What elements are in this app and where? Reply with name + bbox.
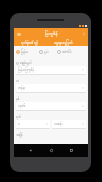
staticText: ရက် [16, 115, 21, 120]
staticText: ၁၃၈၆ [18, 104, 26, 109]
staticText: လဆန်း [54, 122, 63, 127]
button[interactable]: ရှမ်း [39, 49, 49, 55]
button[interactable]: ၁၃၈၆ [16, 102, 86, 110]
staticText: နေ့ထူးနေ့မြတ် [54, 40, 73, 45]
button[interactable]: မြန်မာ [16, 49, 29, 55]
staticText: ၁ [18, 122, 20, 127]
button[interactable]: Back [26, 146, 35, 155]
button[interactable]: လဆန်း [52, 120, 86, 128]
button[interactable]: More options [80, 30, 87, 37]
staticText: မြန်မာ [21, 50, 29, 55]
staticText: တန်ခူး [18, 86, 26, 91]
staticText: ရက်စွဲခေါ်ရန် [21, 40, 38, 45]
staticText: အင်္ဂလိပ် [62, 50, 72, 55]
button[interactable]: တန်ခူး [16, 84, 86, 92]
button[interactable]: အင်္ဂလိပ် [57, 49, 72, 55]
button[interactable]: မြန်မာပြက္ခဒိန် [16, 66, 86, 74]
staticText: လ [16, 79, 19, 84]
button[interactable]: ရက်စွဲခေါ်ရန် [14, 38, 45, 46]
button[interactable]: Recent apps [67, 146, 76, 155]
button[interactable]: Home [47, 146, 56, 155]
staticText: နေ့စွဲရွေးပါ [20, 61, 32, 66]
staticText: နှစ် [16, 97, 20, 102]
staticText: မြန်မာပြက္ခဒိန် [18, 68, 34, 73]
button[interactable]: ၁ [16, 120, 50, 128]
staticText: ရှမ်း [44, 50, 49, 55]
staticText: ပြက္ခဒိန် [45, 30, 58, 37]
button[interactable]: နေ့ထူးနေ့မြတ် [45, 38, 88, 46]
staticText: အချိန် [16, 133, 23, 138]
button[interactable]: Navigate up [15, 30, 22, 37]
